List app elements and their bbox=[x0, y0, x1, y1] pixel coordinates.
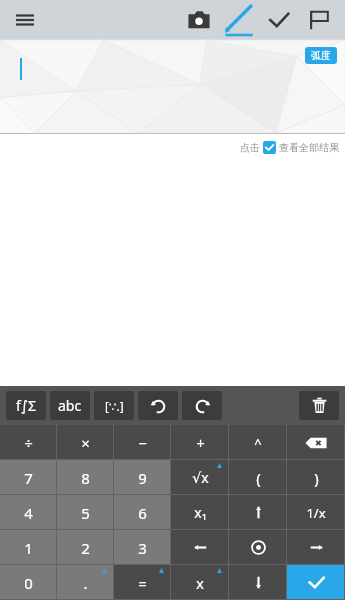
staticText: 3 bbox=[138, 538, 147, 558]
button[interactable]: × bbox=[57, 425, 114, 460]
staticText: f∫Σ bbox=[16, 396, 37, 415]
staticText: ÷ bbox=[24, 433, 33, 453]
button[interactable]: Camera bbox=[179, 0, 219, 40]
staticText: 查看全部结果 bbox=[279, 141, 339, 154]
button[interactable]: 7 bbox=[0, 460, 57, 495]
button[interactable]: ^ bbox=[229, 425, 287, 460]
button[interactable]: Move down bbox=[229, 565, 287, 600]
button[interactable]: 点击 bbox=[240, 141, 339, 154]
staticText: = bbox=[138, 573, 147, 593]
button[interactable]: = bbox=[114, 565, 171, 600]
button[interactable]: Redo bbox=[182, 391, 222, 420]
button[interactable]: ) bbox=[287, 460, 345, 495]
button[interactable]: . bbox=[57, 565, 114, 600]
staticText: ) bbox=[314, 468, 319, 488]
button[interactable]: 8 bbox=[57, 460, 114, 495]
button[interactable]: abc bbox=[50, 391, 90, 420]
staticText: [∵.] bbox=[105, 398, 124, 414]
button[interactable]: 6 bbox=[114, 495, 171, 530]
button[interactable]: Confirm bbox=[287, 565, 345, 600]
button[interactable]: 9 bbox=[114, 460, 171, 495]
staticText: x₁ bbox=[194, 503, 207, 522]
staticText: 2 bbox=[81, 538, 90, 558]
button[interactable]: 1 bbox=[0, 530, 57, 565]
staticText: 点击 bbox=[240, 141, 260, 154]
staticText: 7 bbox=[24, 468, 33, 488]
staticText: . bbox=[83, 573, 88, 593]
button[interactable]: f∫Σ bbox=[6, 391, 46, 420]
staticText: 9 bbox=[138, 468, 147, 488]
staticText: 8 bbox=[81, 468, 90, 488]
button[interactable]: − bbox=[114, 425, 171, 460]
button[interactable]: 0 bbox=[0, 565, 57, 600]
button[interactable]: Move up bbox=[229, 495, 287, 530]
staticText: − bbox=[138, 433, 147, 453]
staticText: ^ bbox=[254, 434, 262, 452]
staticText: ( bbox=[256, 468, 261, 488]
staticText: 5 bbox=[81, 503, 90, 523]
staticText: √x bbox=[192, 468, 209, 487]
button[interactable]: Move left bbox=[171, 530, 229, 565]
button[interactable]: 弧度 bbox=[305, 47, 337, 64]
button[interactable]: 4 bbox=[0, 495, 57, 530]
button[interactable]: x bbox=[171, 565, 229, 600]
button[interactable]: [∵.] bbox=[94, 391, 134, 420]
staticText: abc bbox=[58, 396, 82, 415]
staticText: 4 bbox=[24, 503, 33, 523]
button[interactable]: √x bbox=[171, 460, 229, 495]
button[interactable]: 5 bbox=[57, 495, 114, 530]
staticText: x bbox=[196, 573, 204, 593]
button[interactable]: Confirm bbox=[259, 0, 299, 40]
button[interactable]: ( bbox=[229, 460, 287, 495]
button[interactable]: 3 bbox=[114, 530, 171, 565]
staticText: × bbox=[81, 433, 90, 453]
button[interactable]: Flag bbox=[299, 0, 339, 40]
button[interactable]: ÷ bbox=[0, 425, 57, 460]
button[interactable]: + bbox=[171, 425, 229, 460]
staticText: + bbox=[196, 433, 205, 453]
staticText: 6 bbox=[138, 503, 147, 523]
button[interactable]: Backspace bbox=[287, 425, 345, 460]
staticText: 弧度 bbox=[311, 49, 331, 62]
button[interactable]: Move right bbox=[287, 530, 345, 565]
button[interactable]: Menu bbox=[8, 3, 42, 37]
button[interactable]: 1/x bbox=[287, 495, 345, 530]
button[interactable]: Undo bbox=[138, 391, 178, 420]
button[interactable]: Select bbox=[229, 530, 287, 565]
staticText: 1 bbox=[24, 538, 33, 558]
staticText: 1/x bbox=[306, 504, 326, 522]
staticText: 0 bbox=[24, 573, 33, 593]
button[interactable]: 2 bbox=[57, 530, 114, 565]
button[interactable]: Draw bbox=[219, 0, 259, 40]
button[interactable]: x₁ bbox=[171, 495, 229, 530]
button[interactable]: Delete bbox=[299, 391, 339, 420]
